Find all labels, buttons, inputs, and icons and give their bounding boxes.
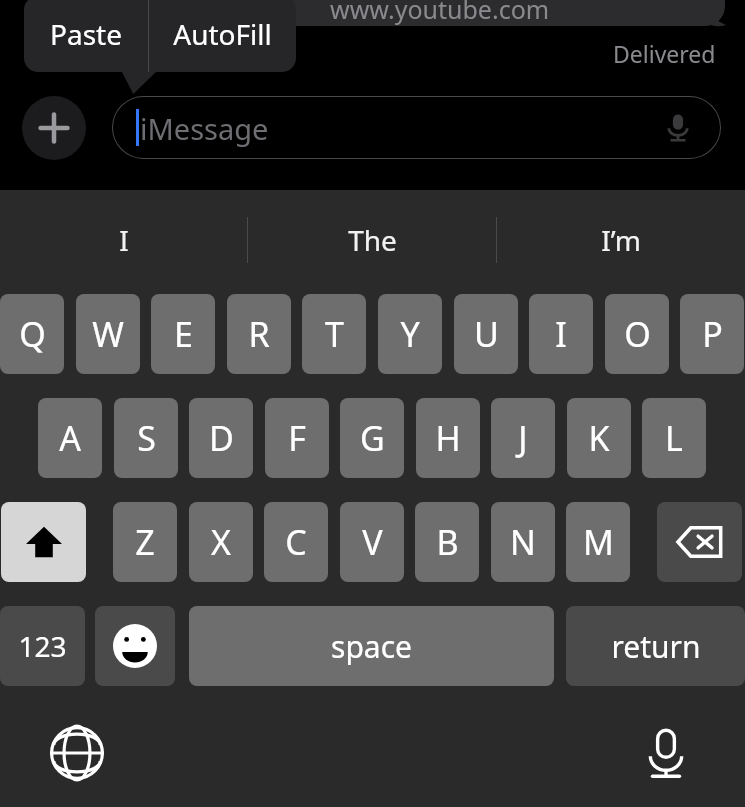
staticText: F bbox=[288, 415, 306, 461]
button[interactable]: T bbox=[302, 294, 366, 374]
button[interactable]: X bbox=[189, 502, 253, 582]
button[interactable]: space bbox=[189, 606, 554, 686]
staticText: N bbox=[510, 519, 536, 565]
button[interactable]: 123 bbox=[0, 606, 85, 686]
button[interactable]: iMessage bbox=[112, 96, 721, 159]
staticText: W bbox=[92, 311, 124, 357]
staticText: U bbox=[474, 311, 499, 357]
staticText: space bbox=[331, 626, 412, 667]
button[interactable]: M bbox=[566, 502, 630, 582]
button[interactable]: Z bbox=[113, 502, 177, 582]
staticText: iMessage bbox=[140, 109, 269, 148]
staticText: L bbox=[665, 415, 683, 461]
staticText: return bbox=[611, 626, 701, 667]
staticText: T bbox=[325, 311, 344, 357]
button[interactable]: H bbox=[416, 398, 480, 478]
button[interactable]: AutoFill bbox=[149, 0, 296, 72]
button[interactable]: I’m bbox=[497, 190, 745, 290]
button[interactable]: D bbox=[189, 398, 253, 478]
staticText: E bbox=[174, 311, 193, 357]
button[interactable]: O bbox=[605, 294, 669, 374]
button[interactable]: V bbox=[340, 502, 404, 582]
staticText: C bbox=[285, 519, 307, 565]
staticText: S bbox=[137, 415, 156, 461]
button[interactable]: F bbox=[265, 398, 329, 478]
staticText: O bbox=[624, 311, 651, 357]
staticText: I bbox=[555, 311, 567, 357]
button[interactable]: L bbox=[642, 398, 706, 478]
staticText: Paste bbox=[50, 15, 122, 53]
button[interactable]: return bbox=[566, 606, 745, 686]
button[interactable]: Dictation bbox=[631, 718, 701, 788]
staticText: AutoFill bbox=[173, 15, 272, 53]
staticText: X bbox=[211, 519, 231, 565]
staticText: Q bbox=[19, 311, 46, 357]
button[interactable]: W bbox=[76, 294, 140, 374]
button[interactable]: U bbox=[454, 294, 518, 374]
button[interactable]: J bbox=[491, 398, 555, 478]
staticText: 123 bbox=[18, 627, 67, 665]
button[interactable]: E bbox=[151, 294, 215, 374]
button[interactable]: P bbox=[680, 294, 744, 374]
button[interactable]: C bbox=[264, 502, 328, 582]
button[interactable]: I bbox=[0, 190, 247, 290]
staticText: V bbox=[362, 519, 383, 565]
staticText: G bbox=[360, 415, 385, 461]
staticText: R bbox=[248, 311, 270, 357]
staticText: M bbox=[583, 519, 614, 565]
staticText: Z bbox=[135, 519, 155, 565]
button[interactable]: Switch keyboard bbox=[42, 718, 112, 788]
staticText: K bbox=[588, 415, 610, 461]
button[interactable]: B bbox=[415, 502, 479, 582]
button[interactable]: Q bbox=[0, 294, 64, 374]
staticText: A bbox=[59, 415, 81, 461]
staticText: The bbox=[348, 221, 397, 259]
button[interactable]: Add attachment bbox=[22, 96, 86, 160]
button[interactable]: Y bbox=[378, 294, 442, 374]
staticText: H bbox=[435, 415, 461, 461]
button[interactable]: G bbox=[340, 398, 404, 478]
button[interactable]: K bbox=[567, 398, 631, 478]
staticText: B bbox=[436, 519, 459, 565]
button[interactable]: R bbox=[227, 294, 291, 374]
button[interactable]: S bbox=[114, 398, 178, 478]
staticText: Delivered bbox=[613, 38, 716, 69]
button[interactable]: Shift bbox=[1, 502, 86, 582]
staticText: D bbox=[209, 415, 234, 461]
staticText: I bbox=[119, 221, 129, 259]
staticText: P bbox=[702, 311, 723, 357]
staticText: Y bbox=[400, 311, 420, 357]
button[interactable]: N bbox=[491, 502, 555, 582]
button[interactable]: Backspace bbox=[657, 502, 742, 582]
button[interactable]: A bbox=[38, 398, 102, 478]
button[interactable]: Paste bbox=[24, 0, 148, 72]
staticText: I’m bbox=[601, 221, 641, 259]
other: Dictate bbox=[661, 111, 695, 145]
button[interactable]: I bbox=[529, 294, 593, 374]
button[interactable]: The bbox=[248, 190, 496, 290]
staticText: J bbox=[518, 415, 528, 461]
staticText: www.youtube.com bbox=[330, 0, 550, 26]
button[interactable]: Emoji bbox=[95, 606, 175, 686]
